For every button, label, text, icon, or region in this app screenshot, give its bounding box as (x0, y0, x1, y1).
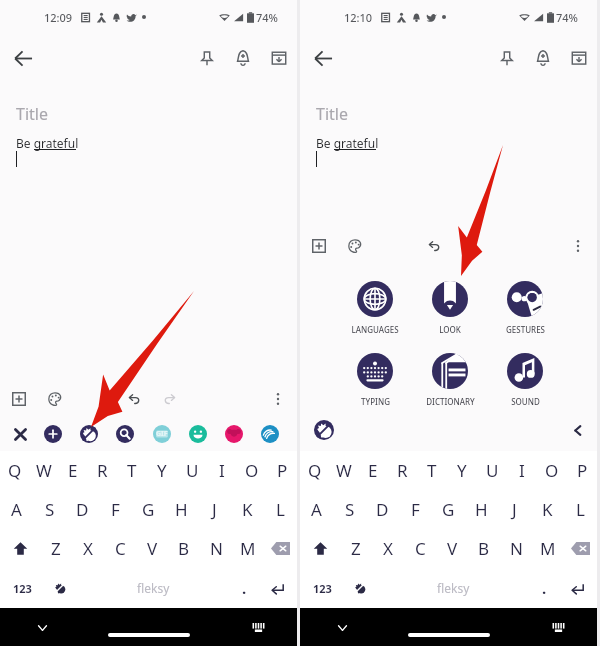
button[interactable]: Emoji (189, 425, 207, 443)
button[interactable]: Space (76, 568, 230, 608)
button[interactable]: Collapse (568, 421, 586, 439)
button[interactable]: TYPING (335, 353, 415, 407)
button[interactable]: Themes (261, 425, 279, 443)
button[interactable]: Fleksy key (344, 568, 376, 608)
button[interactable]: Reminder (228, 43, 258, 73)
button[interactable]: H (465, 490, 498, 529)
button[interactable]: G (132, 490, 165, 529)
button[interactable]: W (29, 451, 58, 490)
button[interactable]: M (532, 529, 564, 568)
button[interactable]: Archive (564, 43, 594, 73)
button[interactable]: Color palette (342, 233, 368, 259)
button[interactable]: Z (40, 529, 72, 568)
button[interactable]: W (329, 451, 358, 490)
button[interactable]: N (200, 529, 232, 568)
button[interactable]: Z (340, 529, 372, 568)
button[interactable]: Add (44, 425, 62, 443)
button[interactable]: Search (116, 425, 134, 443)
button[interactable]: V (136, 529, 168, 568)
button[interactable]: C (104, 529, 136, 568)
button[interactable]: S (333, 490, 366, 529)
button[interactable]: F (399, 490, 432, 529)
button[interactable]: R (87, 451, 117, 490)
button[interactable]: L (564, 490, 597, 529)
button[interactable]: Q (0, 451, 29, 490)
button[interactable]: Hide keyboard (32, 618, 52, 638)
button[interactable]: F (99, 490, 132, 529)
button[interactable]: Close (8, 422, 33, 447)
button[interactable]: O (537, 451, 567, 490)
button[interactable]: B (468, 529, 500, 568)
button[interactable]: E (58, 451, 87, 490)
button[interactable]: A (0, 490, 33, 529)
button[interactable]: O (237, 451, 267, 490)
button[interactable]: Redo (157, 386, 183, 412)
button[interactable]: 123 (300, 568, 344, 608)
button[interactable]: Undo (121, 386, 147, 412)
button[interactable]: Fleksy key (44, 568, 76, 608)
button[interactable]: V (436, 529, 468, 568)
button[interactable]: M (232, 529, 264, 568)
button[interactable]: Pin (192, 43, 222, 73)
button[interactable]: Y (147, 451, 177, 490)
button[interactable]: Back (308, 43, 338, 73)
button[interactable]: T (117, 451, 147, 490)
button[interactable]: Back (8, 43, 38, 73)
button[interactable]: T (417, 451, 447, 490)
button[interactable]: P (567, 451, 597, 490)
button[interactable]: X (372, 529, 404, 568)
button[interactable]: Switch keyboard (248, 617, 268, 637)
button[interactable]: Archive (264, 43, 294, 73)
button[interactable]: GESTURES (485, 281, 565, 335)
button[interactable]: C (404, 529, 436, 568)
button[interactable]: J (198, 490, 231, 529)
button[interactable]: Reminder (528, 43, 558, 73)
button[interactable]: Pin (492, 43, 522, 73)
button[interactable]: Enter (558, 568, 597, 608)
button[interactable]: More options (265, 386, 291, 412)
button[interactable]: J (498, 490, 531, 529)
button[interactable]: Backspace (264, 529, 297, 568)
button[interactable]: Switch keyboard (548, 617, 568, 637)
button[interactable]: U (177, 451, 207, 490)
button[interactable]: R (387, 451, 417, 490)
button[interactable]: GIF (153, 425, 171, 443)
button[interactable]: . (530, 568, 558, 608)
button[interactable]: Redo (457, 233, 483, 259)
button[interactable]: K (231, 490, 264, 529)
button[interactable]: G (432, 490, 465, 529)
button[interactable]: . (230, 568, 258, 608)
button[interactable]: K (531, 490, 564, 529)
button[interactable]: Undo (421, 233, 447, 259)
button[interactable]: X (72, 529, 104, 568)
button[interactable]: Add (6, 386, 32, 412)
button[interactable]: Stickers (225, 425, 243, 443)
button[interactable]: Shift (300, 529, 340, 568)
button[interactable]: Color palette (42, 386, 68, 412)
button[interactable]: Q (300, 451, 329, 490)
button[interactable]: N (500, 529, 532, 568)
button[interactable]: Space (376, 568, 530, 608)
button[interactable]: Hide keyboard (332, 618, 352, 638)
button[interactable]: Fleksy extensions (80, 425, 98, 443)
button[interactable]: 123 (0, 568, 44, 608)
button[interactable]: Fleksy menu (314, 420, 334, 440)
button[interactable]: D (66, 490, 99, 529)
button[interactable]: D (366, 490, 399, 529)
button[interactable]: LOOK (410, 281, 490, 335)
button[interactable]: U (477, 451, 507, 490)
button[interactable]: DICTIONARY (410, 353, 490, 407)
button[interactable]: LANGUAGES (335, 281, 415, 335)
button[interactable]: H (165, 490, 198, 529)
button[interactable]: B (168, 529, 200, 568)
button[interactable]: S (33, 490, 66, 529)
button[interactable]: Shift (0, 529, 40, 568)
button[interactable]: I (207, 451, 237, 490)
button[interactable]: P (267, 451, 297, 490)
button[interactable]: Y (447, 451, 477, 490)
button[interactable]: More options (565, 233, 591, 259)
button[interactable]: A (300, 490, 333, 529)
button[interactable]: Add (306, 233, 332, 259)
button[interactable]: SOUND (485, 353, 565, 407)
button[interactable]: Backspace (564, 529, 597, 568)
